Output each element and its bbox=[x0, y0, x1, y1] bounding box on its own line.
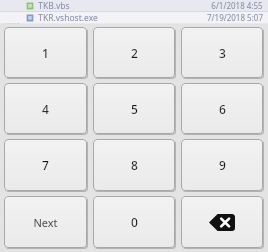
staticText: Next bbox=[33, 215, 58, 230]
staticText: 3 bbox=[219, 45, 226, 61]
staticText: 8 bbox=[131, 157, 138, 173]
staticText: 7 bbox=[42, 157, 49, 173]
staticText: TKB.vbs bbox=[38, 0, 70, 11]
staticText: 9 bbox=[219, 157, 226, 173]
staticText: TKR.vshost.exe bbox=[38, 12, 98, 23]
button[interactable]: 1 bbox=[4, 27, 87, 78]
button[interactable]: 5 bbox=[93, 83, 175, 134]
staticText: 6 bbox=[219, 101, 226, 117]
button[interactable]: 6 bbox=[181, 83, 263, 134]
button[interactable]: 9 bbox=[181, 139, 263, 191]
staticText: 4 bbox=[42, 101, 49, 117]
staticText: 5 bbox=[131, 101, 138, 117]
button[interactable]: 0 bbox=[93, 196, 175, 248]
staticText: 2 bbox=[131, 45, 138, 61]
button[interactable]: Backspace bbox=[181, 196, 263, 248]
button[interactable]: 7 bbox=[4, 139, 87, 191]
staticText: 7/19/2018 5:07 bbox=[207, 12, 263, 23]
button[interactable]: Next bbox=[4, 196, 87, 248]
button[interactable]: 4 bbox=[4, 83, 87, 134]
button[interactable]: 8 bbox=[93, 139, 175, 191]
staticText: 1 bbox=[42, 45, 49, 61]
button[interactable]: 3 bbox=[181, 27, 263, 78]
staticText: 0 bbox=[131, 214, 138, 230]
staticText: 6/1/2018 4:55 bbox=[211, 0, 263, 11]
button[interactable]: 2 bbox=[93, 27, 175, 78]
